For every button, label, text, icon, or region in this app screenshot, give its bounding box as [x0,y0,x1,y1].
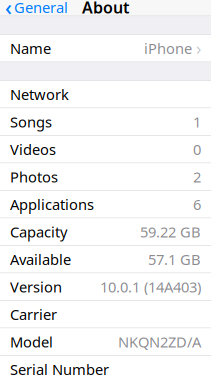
button[interactable]: Songs [0,108,211,135]
staticText: NKQN2ZD/A [118,332,201,351]
button[interactable]: Model [0,328,211,355]
button[interactable]: Applications [0,191,211,218]
button[interactable]: Photos [0,163,211,190]
staticText: 6 [193,194,201,214]
staticText: 2 [193,167,201,186]
staticText: Network [10,84,69,104]
staticText: Available [10,249,71,269]
staticText: Carrier [10,304,57,324]
staticText: Serial Number [10,359,109,376]
staticText: General [14,0,68,17]
staticText: Photos [10,167,58,186]
button[interactable]: Name [0,35,211,62]
staticText: Songs [10,112,52,131]
staticText: Videos [10,139,56,159]
button[interactable]: Carrier [0,301,211,328]
staticText: Version [10,277,62,296]
button[interactable]: Available [0,246,211,273]
staticText: Capacity [10,222,67,241]
button[interactable]: ‹ [0,0,73,16]
staticText: Name [10,38,51,58]
staticText: 57.1 GB [148,249,201,269]
staticText: › [196,37,201,60]
button[interactable]: Capacity [0,218,211,245]
button[interactable]: Videos [0,136,211,163]
button[interactable]: Version [0,273,211,300]
staticText: iPhone [144,38,192,58]
staticText: 1 [193,112,201,131]
staticText: 10.0.1 (14A403) [100,277,201,296]
staticText: Model [10,332,53,351]
staticText: ‹ [5,0,12,21]
button[interactable]: Serial Number [0,356,211,376]
button[interactable]: Network [0,81,211,108]
staticText: Applications [10,194,94,214]
staticText: 59.22 GB [140,222,201,241]
staticText: About [82,0,129,18]
staticText: 0 [193,139,201,159]
